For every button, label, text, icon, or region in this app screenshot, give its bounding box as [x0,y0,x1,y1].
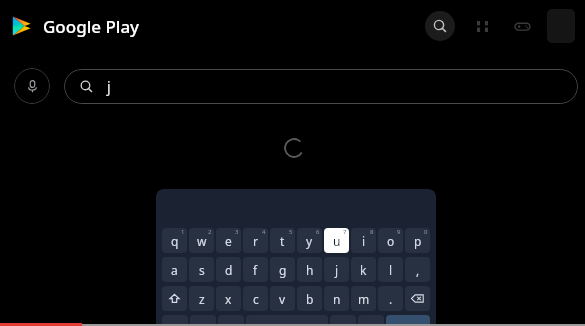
button[interactable]: q [162,228,187,253]
staticText: , [416,262,420,278]
staticText: Google Play [43,15,140,38]
button[interactable]: Comma [358,315,384,326]
button[interactable]: , [405,257,430,282]
button[interactable]: t [270,228,295,253]
staticText: v [279,291,286,307]
button[interactable]: i [351,228,376,253]
staticText: c [253,291,259,307]
staticText: 1 [181,228,185,236]
button[interactable]: j [64,69,578,104]
staticText: 5 [289,228,293,236]
button[interactable]: p [405,228,430,253]
button[interactable]: Backspace [405,286,430,311]
button[interactable]: m [351,286,376,311]
staticText: l [389,262,393,278]
button[interactable]: o [378,228,403,253]
button[interactable]: z [189,286,214,311]
button[interactable]: b [297,286,322,311]
button[interactable]: Language [218,315,244,326]
staticText: o [387,233,395,249]
button[interactable]: j [324,257,349,282]
button[interactable]: y [297,228,322,253]
staticText: z [199,291,205,307]
button[interactable]: e [216,228,241,253]
button[interactable]: c [243,286,268,311]
button[interactable]: Space [246,315,328,326]
staticText: 6 [316,228,320,236]
button[interactable]: n [324,286,349,311]
staticText: m [358,291,370,307]
staticText: w [197,233,207,249]
button[interactable]: g [270,257,295,282]
staticText: q [171,233,179,249]
staticText: k [360,262,367,278]
button[interactable]: l [378,257,403,282]
staticText: g [279,262,287,278]
staticText: j [335,262,339,278]
button[interactable]: d [216,257,241,282]
staticText: x [225,291,232,307]
staticText: u [333,233,341,249]
staticText: i [362,233,366,249]
staticText: 9 [397,228,401,236]
staticText: 7 [343,228,347,236]
staticText: 3 [235,228,239,236]
button[interactable]: v [270,286,295,311]
staticText: . [389,291,393,307]
button[interactable]: Search [386,315,430,326]
staticText: r [253,233,258,249]
staticText: e [225,233,232,249]
button[interactable]: Symbols [162,315,188,326]
staticText: 2 [208,228,212,236]
button[interactable]: Shift [162,286,187,311]
staticText: d [225,262,233,278]
button[interactable]: Period [330,315,356,326]
button[interactable]: Search [425,11,455,41]
button[interactable]: s [189,257,214,282]
button[interactable]: Emoji [190,315,216,326]
staticText: s [199,262,205,278]
button[interactable]: u [324,228,349,253]
staticText: 4 [262,228,266,236]
button[interactable]: Games [509,13,535,39]
staticText: n [333,291,341,307]
staticText: j [107,77,111,96]
button[interactable]: a [162,257,187,282]
staticText: t [280,233,285,249]
staticText: p [414,233,422,249]
button[interactable]: r [243,228,268,253]
button[interactable]: w [189,228,214,253]
button[interactable]: f [243,257,268,282]
button[interactable]: Voice search [14,68,50,104]
button[interactable]: . [378,286,403,311]
staticText: 0 [424,228,428,236]
staticText: b [306,291,314,307]
staticText: 8 [370,228,374,236]
staticText: y [306,233,313,249]
button[interactable]: x [216,286,241,311]
button[interactable]: Apps [469,13,495,39]
staticText: a [171,262,178,278]
button[interactable]: k [351,257,376,282]
staticText: h [306,262,314,278]
button[interactable]: h [297,257,322,282]
staticText: f [253,262,258,278]
